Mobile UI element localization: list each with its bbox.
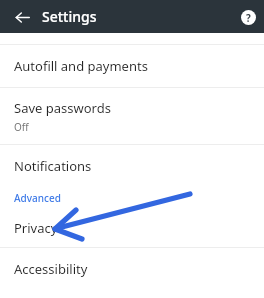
staticText: Save passwords: [14, 99, 111, 117]
staticText: Accessibility: [14, 260, 88, 278]
staticText: Privacy: [14, 219, 58, 237]
button[interactable]: Help: [232, 1, 264, 33]
staticText: ?: [246, 11, 251, 25]
button[interactable]: Autofill and payments: [0, 45, 264, 87]
staticText: Settings: [42, 7, 97, 26]
staticText: Autofill and payments: [14, 57, 148, 75]
button[interactable]: Privacy: [0, 209, 264, 247]
button[interactable]: Notifications: [0, 145, 264, 187]
staticText: Off: [14, 120, 29, 134]
staticText: Notifications: [14, 157, 92, 175]
button[interactable]: Save passwords: [0, 88, 264, 144]
button[interactable]: Back: [6, 1, 38, 33]
button[interactable]: Accessibility: [0, 248, 264, 290]
staticText: Advanced: [14, 191, 61, 205]
